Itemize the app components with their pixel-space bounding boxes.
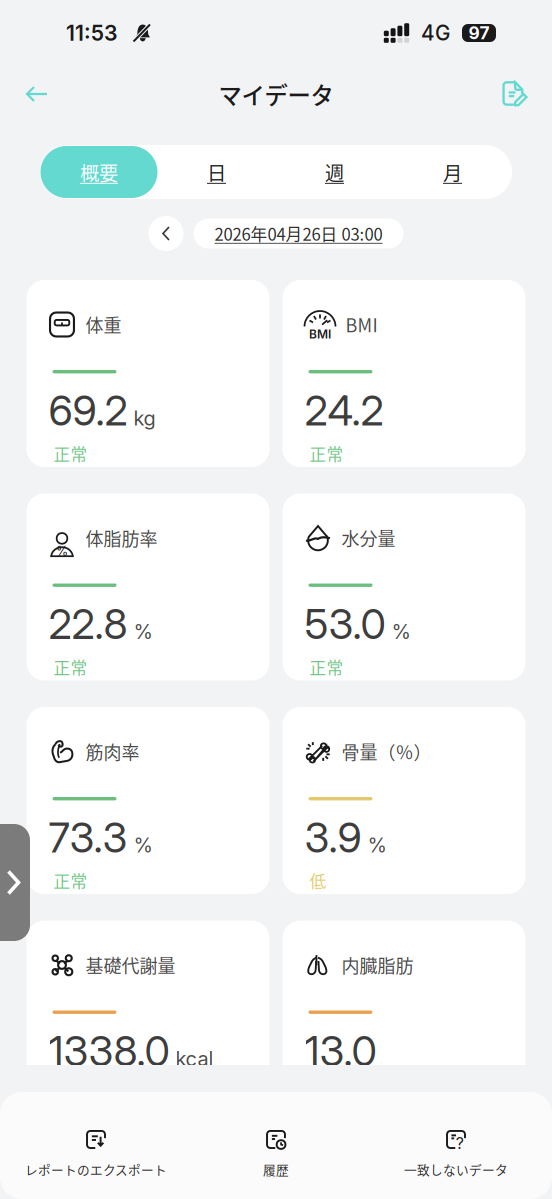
staticText: 4G (421, 20, 450, 45)
staticText: 水分量 (341, 525, 395, 551)
staticText: レポートのエクスポート (25, 1160, 167, 1178)
staticText: 正常 (309, 655, 343, 679)
button[interactable]: Open side panel (0, 824, 45, 941)
staticText: 内臓脂肪 (341, 952, 413, 978)
button[interactable]: ? (360, 1128, 552, 1188)
staticText: 3.9 (304, 812, 361, 862)
staticText: 53.0 (304, 599, 385, 649)
staticText: 週 (325, 158, 344, 186)
staticText: マイデータ (218, 77, 333, 111)
staticText: 筋肉率 (85, 738, 139, 765)
staticText: 2026年04月26日 03:00 (214, 221, 382, 245)
staticText: 月 (443, 158, 462, 186)
button[interactable]: Back (14, 71, 60, 117)
staticText: 1338.0 (48, 1026, 169, 1076)
staticText: % (391, 620, 410, 644)
staticText: 正常 (53, 655, 87, 679)
staticText: % (133, 620, 152, 644)
staticText: 履歴 (263, 1160, 289, 1178)
button[interactable]: 2026年04月26日 03:00 (193, 218, 403, 248)
button[interactable]: 日 (157, 146, 275, 198)
staticText: 骨量（％） (341, 738, 431, 765)
staticText: 基礎代謝量 (85, 952, 175, 978)
staticText: 69.2 (48, 385, 127, 435)
staticText: % (56, 544, 68, 559)
button[interactable]: 月 (393, 146, 511, 198)
staticText: kg (133, 406, 155, 430)
staticText: 正常 (53, 441, 87, 465)
staticText: % (133, 833, 152, 857)
button[interactable]: 週 (275, 146, 393, 198)
staticText: 11:53 (66, 20, 118, 46)
button[interactable]: 概要 (40, 146, 157, 198)
staticText: 正常 (53, 868, 87, 892)
button[interactable]: レポートのエクスポート (0, 1128, 192, 1188)
staticText: 一致しないデータ (404, 1160, 508, 1178)
staticText: kcal (175, 1047, 213, 1071)
staticText: ? (456, 1133, 464, 1153)
staticText: 13.0 (304, 1026, 376, 1076)
staticText: 正常 (309, 441, 343, 465)
staticText: BMI (345, 311, 377, 338)
staticText: 22.8 (48, 599, 127, 649)
staticText: 97 (468, 22, 489, 43)
staticText: BMI (309, 327, 331, 341)
button[interactable]: Edit data (492, 71, 538, 117)
staticText: 日 (207, 158, 226, 186)
button[interactable]: Previous date (148, 216, 183, 251)
staticText: % (367, 833, 386, 857)
staticText: 体重 (85, 311, 121, 338)
staticText: 低 (309, 868, 326, 892)
staticText: 概要 (80, 158, 118, 186)
staticText: 24.2 (304, 385, 383, 435)
staticText: 体脂肪率 (85, 525, 157, 551)
staticText: 73.3 (48, 812, 127, 862)
button[interactable]: 履歴 (192, 1128, 360, 1188)
